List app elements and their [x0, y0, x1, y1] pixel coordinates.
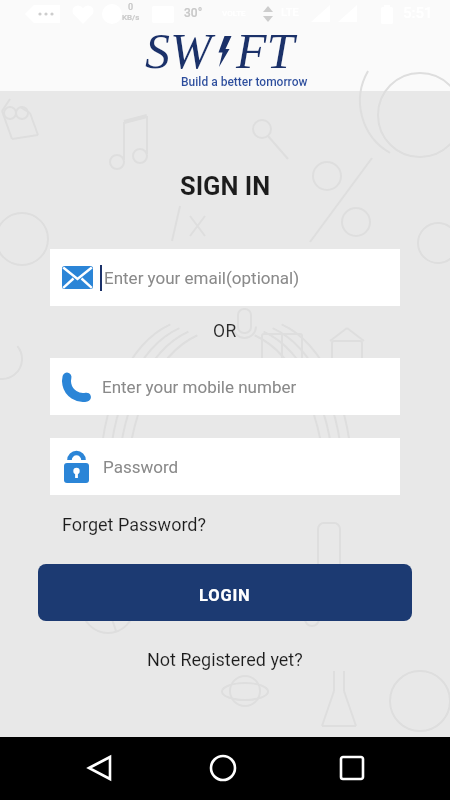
staticText: Enter your mobile number: [102, 377, 297, 397]
staticText: Build a better tomorrow: [181, 75, 308, 89]
staticText: 0: [128, 2, 134, 13]
button[interactable]: Password: [50, 438, 400, 495]
staticText: Not Registered yet?: [147, 649, 303, 670]
button[interactable]: [203, 753, 245, 783]
staticText: OR: [213, 321, 237, 342]
staticText: Password: [103, 457, 179, 477]
button[interactable]: [331, 753, 373, 783]
staticText: LOGIN: [199, 586, 251, 605]
button[interactable]: Not Registered yet?: [147, 649, 303, 670]
staticText: FT: [236, 23, 295, 78]
button[interactable]: Enter your mobile number: [50, 358, 400, 415]
button[interactable]: Enter your email(optional): [50, 249, 400, 306]
staticText: SW: [145, 23, 212, 78]
button[interactable]: LOGIN: [38, 564, 412, 621]
staticText: KB/s: [122, 13, 140, 22]
staticText: Enter your email(optional): [104, 268, 300, 288]
staticText: Forget Password?: [62, 514, 206, 535]
staticText: 30°: [184, 6, 203, 20]
button[interactable]: [79, 753, 121, 783]
staticText: SIGN IN: [180, 171, 271, 201]
button[interactable]: Forget Password?: [62, 514, 206, 535]
